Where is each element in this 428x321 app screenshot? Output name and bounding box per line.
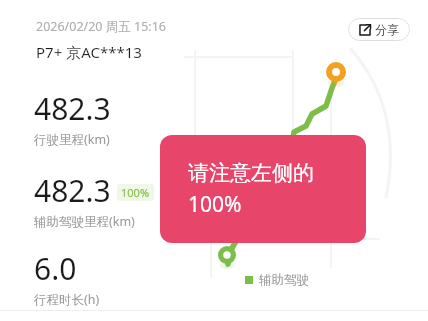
staticText: 100% [121,185,150,200]
button[interactable]: 分享 [348,18,410,41]
staticText: 行程时长(h) [34,291,100,308]
staticText: 482.3 [34,88,111,129]
other: Start point [218,246,236,270]
button[interactable]: 请注意左侧的 100% [160,135,366,243]
staticText: 2026/02/20 周五 15:16 [36,18,166,35]
staticText: 辅助驾驶里程(km) [34,213,135,230]
staticText: 6.0 [34,248,77,289]
staticText: 分享 [375,22,399,37]
other: Destination [326,62,346,88]
staticText: 482.3 [34,170,111,211]
staticText: 辅助驾驶 [259,272,309,288]
staticText: 请注意左侧的 100% [188,160,314,218]
staticText: 行驶里程(km) [34,131,110,148]
staticText: P7+ 京AC***13 [36,42,142,62]
button[interactable]: Destination [180,48,428,310]
